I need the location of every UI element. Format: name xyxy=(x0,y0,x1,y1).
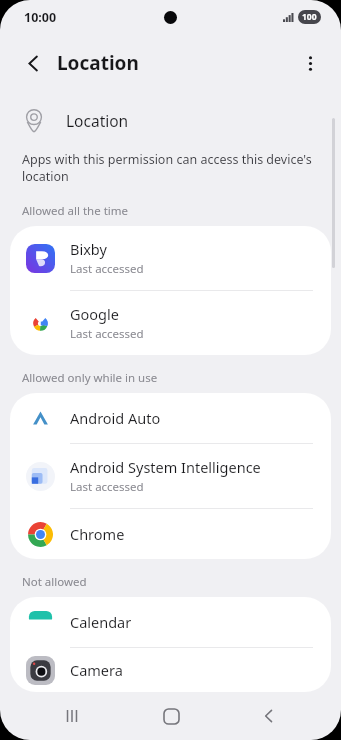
staticText: Android Auto xyxy=(70,408,161,428)
button[interactable]: Chrome xyxy=(10,509,331,559)
staticText: Not allowed xyxy=(22,574,87,590)
button[interactable]: More options xyxy=(290,43,330,83)
button[interactable]: Recent apps xyxy=(45,692,99,740)
staticText: Chrome xyxy=(70,524,125,544)
button[interactable]: Bixby xyxy=(10,226,331,290)
staticText: Google xyxy=(70,304,119,324)
staticText: Location xyxy=(57,50,139,76)
staticText: Last accessed xyxy=(70,326,144,342)
staticText: Bixby xyxy=(70,239,107,259)
staticText: Allowed only while in use xyxy=(22,370,158,386)
staticText: 100 xyxy=(302,11,317,23)
staticText: Last accessed xyxy=(70,479,144,495)
button[interactable]: Back xyxy=(242,692,296,740)
staticText: Apps with this permission can access thi… xyxy=(22,151,317,185)
staticText: 10:00 xyxy=(24,9,57,26)
staticText: Camera xyxy=(70,660,123,680)
button[interactable]: Navigate up xyxy=(12,42,54,84)
button[interactable]: Calendar xyxy=(10,597,331,647)
staticText: Location xyxy=(66,110,129,131)
staticText: Calendar xyxy=(70,612,132,632)
button[interactable]: Google xyxy=(10,291,331,355)
staticText: Android System Intelligence xyxy=(70,457,261,477)
staticText: Allowed all the time xyxy=(22,203,129,219)
button[interactable]: Camera xyxy=(10,648,331,692)
staticText: Last accessed xyxy=(70,261,144,277)
button[interactable]: Android Auto xyxy=(10,393,331,443)
button[interactable]: Android System Intelligence xyxy=(10,444,331,508)
button[interactable]: Home xyxy=(144,692,198,740)
